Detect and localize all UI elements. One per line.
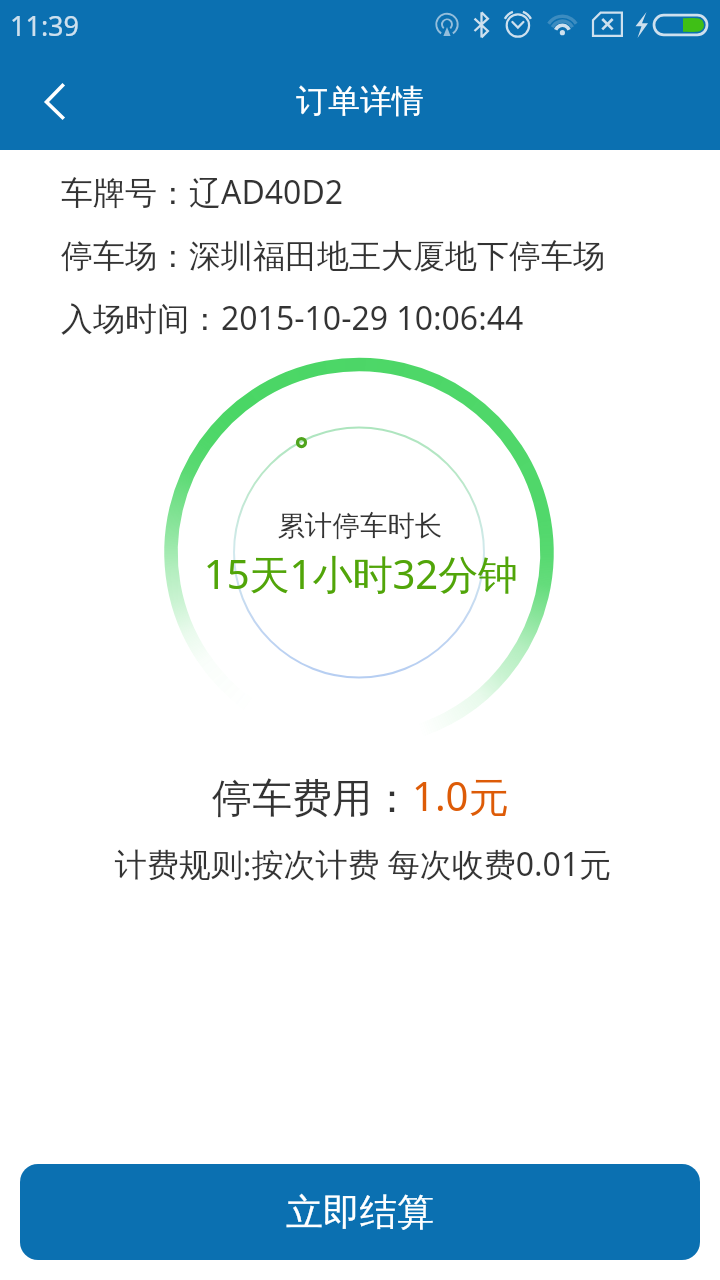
button[interactable]: 立即结算 [20,1164,700,1260]
staticText: 累计停车时长 [0,509,720,544]
staticText: 车牌号：辽AD40D2 [61,170,344,214]
staticText: 11:39 [10,7,80,44]
staticText: 计费规则:按次计费 每次收费0.01元 [3,842,720,886]
staticText: 立即结算 [286,1189,434,1236]
staticText: 1.0元 [412,768,509,823]
staticText: 停车费用： [212,773,412,823]
button[interactable]: Back [17,70,79,132]
staticText: 15天1小时32分钟 [1,546,720,601]
staticText: 停车场：深圳福田地王大厦地下停车场 [61,236,605,276]
staticText: 入场时间：2015-10-29 10:06:44 [61,296,524,340]
staticText: 订单详情 [296,81,424,121]
